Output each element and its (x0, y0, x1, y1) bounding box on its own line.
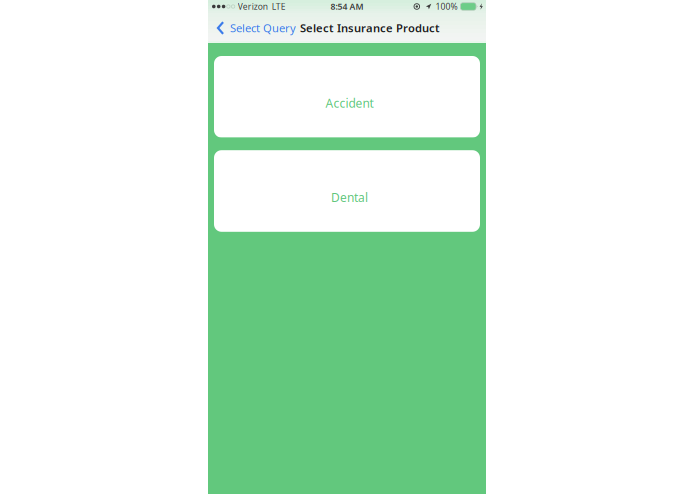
staticText: Verizon LTE (238, 1, 286, 12)
staticText: Select Insurance Product (300, 20, 440, 36)
button[interactable]: Accident (214, 56, 480, 138)
staticText: 8:54 AM (330, 1, 363, 12)
staticText: Select Query (230, 20, 296, 36)
button[interactable]: Select Query (208, 13, 300, 43)
staticText: Accident (325, 95, 373, 111)
button[interactable]: Dental (214, 150, 480, 232)
staticText: Dental (331, 189, 368, 205)
staticText: 100% (435, 1, 457, 12)
